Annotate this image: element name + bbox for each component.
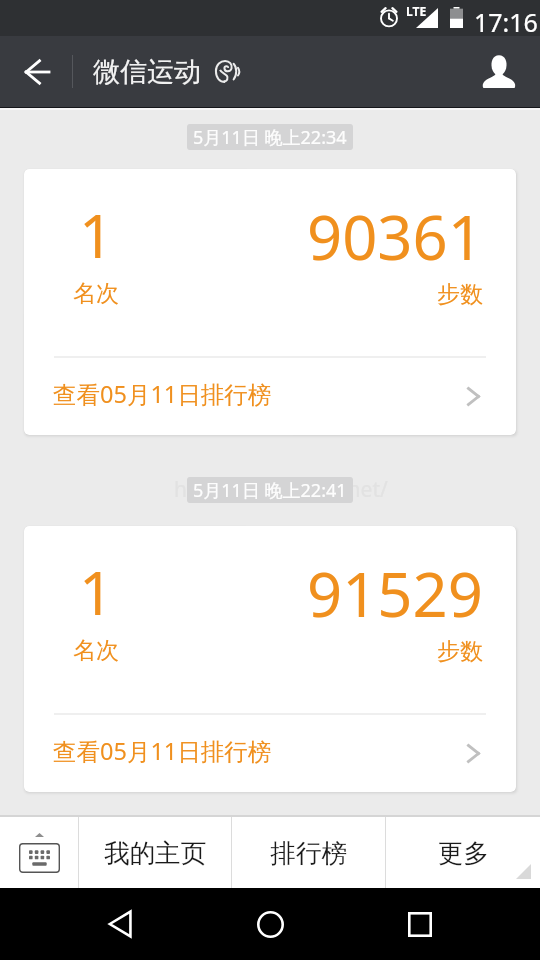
staticText: 5月11日 晚上22:34 bbox=[193, 125, 347, 150]
staticText: 微信运动 bbox=[93, 55, 201, 89]
staticText: 5月11日 晚上22:41 bbox=[193, 478, 347, 503]
staticText: 17:16 bbox=[474, 5, 538, 39]
button[interactable]: 查看05月11日排行榜 bbox=[24, 358, 516, 435]
staticText: LTE bbox=[406, 3, 427, 19]
button[interactable]: Back bbox=[0, 36, 72, 107]
staticText: 1 bbox=[79, 551, 114, 633]
staticText: 90361 bbox=[307, 194, 483, 278]
staticText: 查看05月11日排行榜 bbox=[53, 378, 272, 410]
staticText: 步数 bbox=[437, 637, 483, 666]
staticText: 名次 bbox=[73, 636, 119, 665]
staticText: 91529 bbox=[307, 551, 483, 635]
staticText: 查看05月11日排行榜 bbox=[53, 735, 272, 767]
button[interactable]: 查看05月11日排行榜 bbox=[24, 715, 516, 792]
staticText: 更多 bbox=[438, 837, 489, 869]
staticText: 排行榜 bbox=[270, 837, 347, 869]
staticText: 1 bbox=[79, 194, 114, 276]
staticText: https://blog.csdn.net/ bbox=[174, 475, 388, 504]
button[interactable]: 更多 bbox=[386, 817, 540, 888]
button[interactable]: Keyboard bbox=[0, 817, 78, 888]
button[interactable]: Home bbox=[240, 894, 300, 954]
button[interactable]: 排行榜 bbox=[232, 817, 385, 888]
staticText: 步数 bbox=[437, 280, 483, 309]
button[interactable]: 我的主页 bbox=[79, 817, 231, 888]
staticText: 我的主页 bbox=[104, 837, 206, 869]
button[interactable]: Back bbox=[90, 894, 150, 954]
staticText: 名次 bbox=[73, 279, 119, 308]
button[interactable]: Contacts bbox=[458, 36, 540, 107]
button[interactable]: Recents bbox=[390, 894, 450, 954]
